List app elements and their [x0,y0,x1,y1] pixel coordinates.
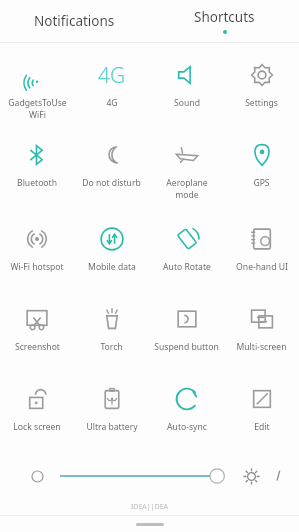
staticText: Suspend button [154,341,219,353]
staticText: GadgetsToUse WiFi [8,97,67,120]
button[interactable]: One-hand UI [224,216,299,273]
button[interactable]: Low brightness [26,465,48,487]
button[interactable]: Notifications [0,0,149,42]
button[interactable]: Brightness slider [60,463,229,489]
staticText: 4G [98,61,126,90]
button[interactable]: Aeroplane mode [149,132,224,200]
staticText: Notifications [34,12,115,30]
staticText: Shortcuts [194,8,255,26]
button[interactable]: Wi-Fi hotspot [0,216,74,273]
staticText: GPS [253,177,270,189]
button[interactable]: Suspend button [149,296,224,353]
staticText: Screenshot [15,341,60,353]
staticText: Wi-Fi hotspot [10,261,64,273]
staticText: Auto Rotate [163,261,211,273]
button[interactable]: Sound [149,52,224,109]
button[interactable]: Ultra battery [74,376,149,433]
staticText: Auto-sync [167,421,207,433]
button[interactable]: GPS [224,132,299,189]
staticText: Lock screen [13,421,61,433]
staticText: Torch [100,341,123,353]
button[interactable]: Settings [224,52,299,109]
button[interactable]: Multi-screen [224,296,299,353]
button[interactable]: Auto brightness [239,464,263,488]
button[interactable]: Lock screen [0,376,74,433]
button[interactable]: GadgetsToUse WiFi [0,52,74,120]
button[interactable]: Auto-sync [149,376,224,433]
staticText: 4G [106,97,118,109]
staticText: One-hand UI [236,261,288,273]
button[interactable]: Shortcuts [149,0,299,42]
button[interactable]: Torch [74,296,149,353]
button[interactable]: More [269,466,289,486]
button[interactable]: 4G [74,52,149,109]
staticText: Do not disturb [82,177,141,189]
button[interactable]: Do not disturb [74,132,149,189]
button[interactable]: Edit [224,376,299,433]
staticText: Mobile data [88,261,136,273]
staticText: Settings [245,97,278,109]
staticText: IDEA||DEA [131,502,169,512]
button[interactable]: Bluetooth [0,132,74,189]
staticText: Aeroplane mode [166,177,208,200]
staticText: Edit [254,421,270,433]
staticText: Bluetooth [17,177,57,189]
button[interactable]: Auto Rotate [149,216,224,273]
button[interactable]: Mobile data [74,216,149,273]
button[interactable]: Screenshot [0,296,74,353]
staticText: Ultra battery [86,421,138,433]
staticText: Multi-screen [236,341,287,353]
staticText: Sound [174,97,200,109]
